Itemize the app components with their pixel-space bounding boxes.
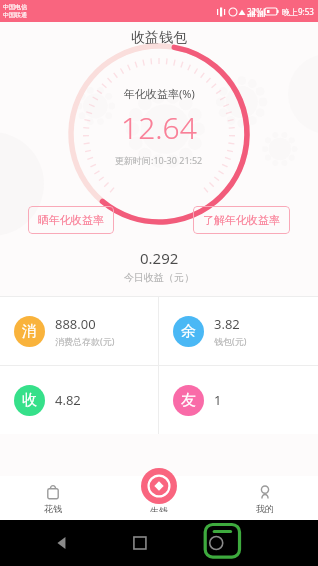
button[interactable]: 晒年化收益率 (28, 206, 114, 234)
staticText: 今日收益（元） (124, 271, 194, 284)
staticText: 888.00 (55, 315, 96, 333)
button[interactable]: 花钱 (0, 476, 106, 520)
staticText: 收益钱包 (131, 29, 187, 47)
staticText: 余 (181, 322, 196, 341)
staticText: 友 (181, 391, 196, 410)
staticText: 4.82 (55, 391, 81, 409)
staticText: 年化收益率(%) (124, 86, 195, 101)
button[interactable]: 了解年化收益率 (193, 206, 290, 234)
staticText: 消费总存款(元) (55, 335, 115, 347)
staticText: 了解年化收益率 (203, 213, 280, 227)
staticText: 3.82 (214, 315, 240, 333)
button[interactable]: 收 (0, 366, 158, 434)
button[interactable]: 我的 (212, 476, 318, 520)
button[interactable]: 生钱 (141, 468, 177, 504)
staticText: 我的 (256, 503, 274, 514)
staticText: 32% (247, 6, 263, 17)
staticText: 收 (22, 391, 37, 410)
staticText: 晒年化收益率 (38, 213, 104, 227)
staticText: 中国电信 (3, 3, 27, 11)
staticText: 花钱 (44, 503, 62, 514)
button[interactable]: 余 (159, 297, 318, 365)
staticText: 更新时间:10-30 21:52 (115, 154, 203, 166)
staticText: 晚上9:53 (282, 6, 314, 17)
staticText: 1 (214, 391, 222, 409)
button[interactable]: 消 (0, 297, 158, 365)
staticText: 消 (22, 322, 37, 341)
staticText: 0.292 (140, 248, 179, 268)
staticText: 生钱 (150, 505, 168, 512)
staticText: 钱包(元) (214, 335, 247, 347)
staticText: 12.64 (121, 107, 197, 148)
button[interactable]: 友 (159, 366, 318, 434)
staticText: 中国联通 (3, 11, 27, 19)
